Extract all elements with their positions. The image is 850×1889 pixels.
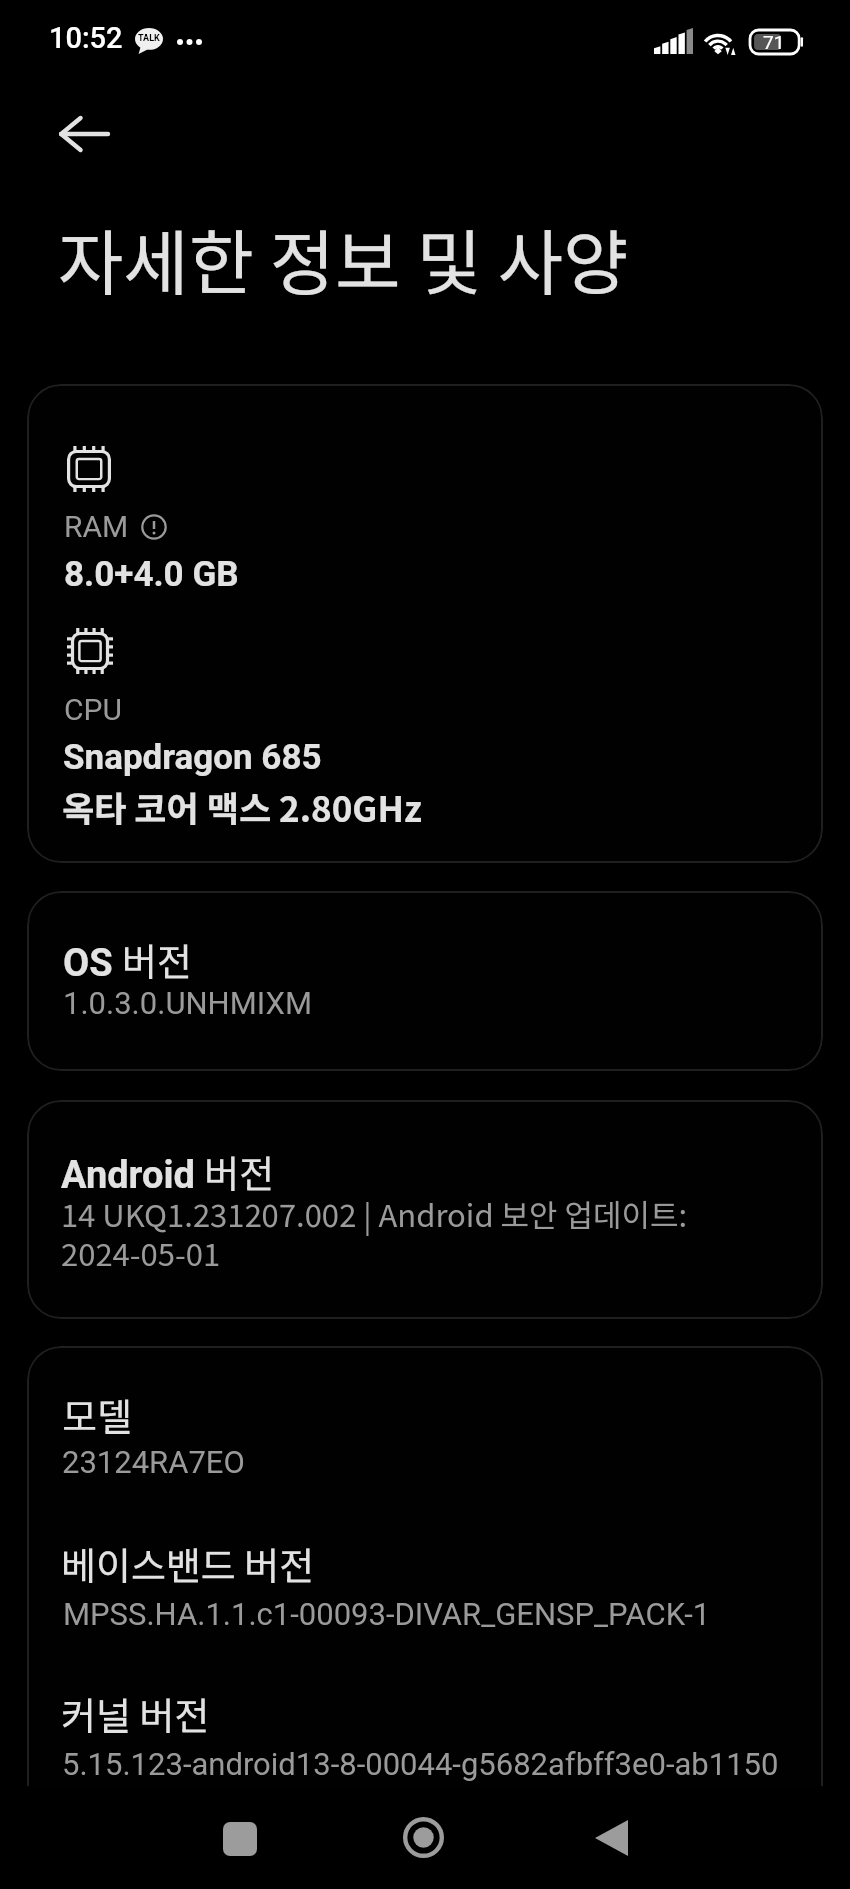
staticText: 14 UKQ1.231207.002 | Android 보안 업데이트: 20… <box>61 1191 688 1275</box>
staticText: RAM <box>64 509 129 544</box>
button[interactable]: 모델 <box>27 1346 823 1786</box>
button[interactable]: OS 버전 <box>27 891 823 1071</box>
staticText: 자세한 정보 및 사양 <box>58 207 629 310</box>
button[interactable]: Home <box>343 1786 503 1889</box>
staticText: 23124RA7EO <box>62 1444 245 1480</box>
staticText: TALK <box>138 33 160 44</box>
button[interactable]: Android 버전 <box>27 1100 823 1319</box>
button[interactable]: Back <box>531 1786 691 1889</box>
staticText: 1.0.3.0.UNHMIXM <box>63 985 312 1021</box>
button[interactable]: Recents <box>160 1786 320 1889</box>
staticText: 커널 버전 <box>61 1686 210 1741</box>
staticText: 8.0+4.0 GB <box>64 554 239 595</box>
button[interactable]: Back <box>30 92 136 176</box>
staticText: 옥타 코어 맥스 2.80GHz <box>62 781 422 832</box>
staticText: Android 버전 <box>61 1144 275 1199</box>
staticText: 71 <box>763 31 785 53</box>
staticText: MPSS.HA.1.1.c1-00093-DIVAR_GENSP_PACK-1 <box>63 1596 711 1632</box>
staticText: 베이스밴드 버전 <box>61 1536 315 1591</box>
button[interactable]: RAM <box>27 384 823 863</box>
staticText: CPU <box>64 692 122 727</box>
staticText: OS 버전 <box>63 932 192 987</box>
staticText: 5.15.123-android13-8-00044-g5682afbff3e0… <box>62 1746 779 1782</box>
staticText: Snapdragon 685 <box>63 737 322 778</box>
staticText: 10:52 <box>49 21 123 55</box>
staticText: 모델 <box>62 1387 132 1442</box>
